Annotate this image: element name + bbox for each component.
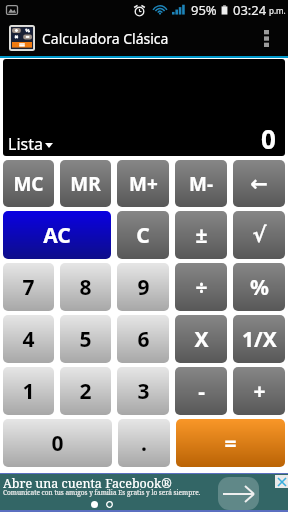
button[interactable]: 2 <box>60 367 111 415</box>
button[interactable]: M- <box>175 160 227 207</box>
button[interactable]: MC <box>3 160 54 207</box>
staticText: Lista <box>8 133 43 155</box>
button[interactable]: 9 <box>117 263 169 311</box>
button[interactable]: 4 <box>3 315 54 363</box>
staticText: 9 <box>137 273 150 302</box>
staticText: Calculadora Clásica <box>42 29 169 48</box>
staticText: 6 <box>137 325 150 354</box>
staticText: + <box>253 377 266 406</box>
button[interactable]: X <box>175 315 227 363</box>
button[interactable]: . <box>118 419 170 467</box>
button[interactable]: + <box>233 367 285 415</box>
staticText: 3 <box>137 377 150 406</box>
staticText: AC <box>43 221 71 250</box>
button[interactable]: AC <box>3 211 111 259</box>
staticText: % <box>250 273 269 302</box>
button[interactable]: 1/X <box>233 315 285 363</box>
button[interactable]: ± <box>175 211 227 259</box>
staticText: M- <box>189 171 213 197</box>
staticText: 5 <box>79 325 92 354</box>
button[interactable]: Next <box>218 477 259 510</box>
button[interactable]: ÷ <box>175 263 227 311</box>
staticText: 95% <box>191 1 217 19</box>
staticText: 03:24 <box>233 1 267 19</box>
button[interactable]: % <box>233 263 285 311</box>
staticText: M+ <box>129 171 158 197</box>
button[interactable]: 7 <box>3 263 54 311</box>
button[interactable]: = <box>176 419 285 467</box>
button[interactable]: Close ad <box>275 475 288 488</box>
staticText: 1 <box>22 377 35 406</box>
button[interactable]: 6 <box>117 315 169 363</box>
staticText: ← <box>250 172 268 196</box>
staticText: = <box>224 429 237 458</box>
staticText: C <box>136 221 150 250</box>
button[interactable]: √ <box>233 211 285 259</box>
staticText: - <box>198 377 205 406</box>
button[interactable]: 1 <box>3 367 54 415</box>
staticText: ± <box>195 221 208 250</box>
button[interactable]: ← <box>233 160 285 207</box>
staticText: 2 <box>79 377 92 406</box>
button[interactable]: - <box>175 367 227 415</box>
staticText: 1/X <box>242 325 277 354</box>
staticText: 7 <box>22 273 35 302</box>
button[interactable]: C <box>117 211 169 259</box>
button[interactable]: M+ <box>117 160 169 207</box>
staticText: p.m. <box>269 5 286 16</box>
staticText: . <box>141 429 147 458</box>
staticText: 0 <box>51 429 64 458</box>
staticText: X <box>194 325 209 354</box>
button[interactable]: Abre una cuenta Facebook® <box>0 473 288 512</box>
staticText: Comunícate con tus amigos y familia Es g… <box>3 488 201 497</box>
staticText: 4 <box>22 325 35 354</box>
button[interactable]: 5 <box>60 315 111 363</box>
button[interactable]: 3 <box>117 367 169 415</box>
button[interactable]: 0 <box>3 419 112 467</box>
staticText: Abre una cuenta Facebook® <box>3 475 172 492</box>
button[interactable]: MR <box>60 160 111 207</box>
button[interactable]: More options <box>248 20 288 56</box>
staticText: √ <box>252 223 267 247</box>
staticText: ÷ <box>195 273 208 302</box>
staticText: 0 <box>261 121 276 156</box>
button[interactable]: 8 <box>60 263 111 311</box>
staticText: MR <box>70 171 101 197</box>
staticText: 8 <box>79 273 92 302</box>
staticText: MC <box>13 171 44 197</box>
